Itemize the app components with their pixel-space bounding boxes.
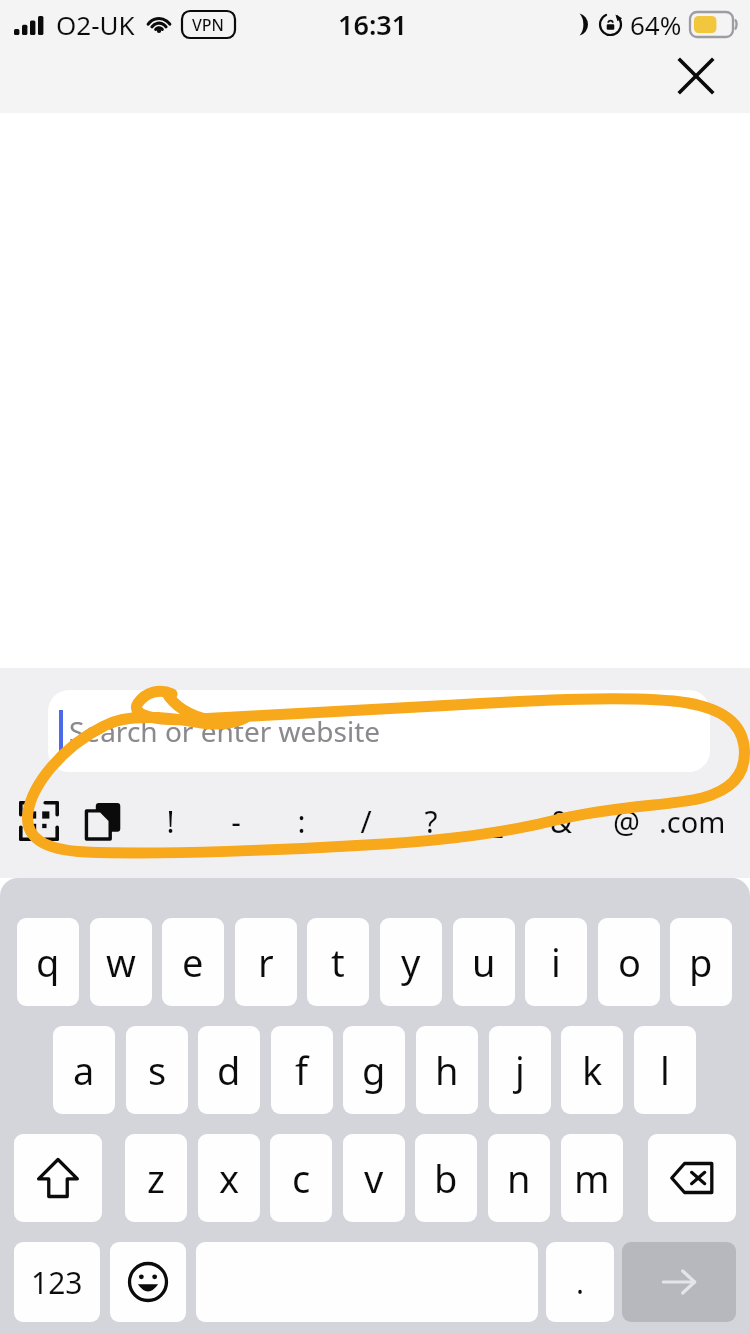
staticText: f	[295, 1044, 309, 1096]
button[interactable]: !	[143, 792, 197, 850]
staticText: .	[576, 1262, 585, 1303]
button[interactable]: Paste and go	[76, 794, 130, 848]
button[interactable]: /	[339, 792, 393, 850]
button[interactable]: Emoji	[110, 1242, 186, 1322]
button[interactable]: q	[17, 918, 79, 1006]
staticText: :	[297, 801, 306, 842]
button[interactable]: o	[598, 918, 660, 1006]
button[interactable]: ?	[404, 792, 458, 850]
staticText: i	[551, 936, 561, 988]
staticText: p	[689, 936, 713, 988]
staticText: _	[489, 801, 503, 842]
staticText: b	[434, 1152, 458, 1204]
staticText: @	[613, 801, 640, 842]
staticText: -	[231, 801, 241, 842]
staticText: w	[106, 936, 136, 988]
staticText: k	[582, 1044, 603, 1096]
staticText: /	[360, 801, 372, 842]
staticText: j	[515, 1044, 525, 1096]
button[interactable]: f	[271, 1026, 333, 1114]
staticText: q	[36, 936, 60, 988]
button[interactable]: Search or enter website	[48, 690, 710, 772]
button[interactable]: u	[453, 918, 515, 1006]
staticText: u	[472, 936, 496, 988]
staticText: .com	[659, 802, 726, 841]
staticText: 123	[31, 1262, 83, 1303]
button[interactable]: -	[209, 792, 263, 850]
button[interactable]: &	[534, 792, 588, 850]
staticText: g	[362, 1044, 386, 1096]
button[interactable]: a	[53, 1026, 115, 1114]
staticText: O2-UK	[56, 7, 135, 42]
button[interactable]: e	[162, 918, 224, 1006]
staticText: z	[147, 1152, 165, 1204]
button[interactable]: r	[235, 918, 297, 1006]
button[interactable]: y	[380, 918, 442, 1006]
button[interactable]: Close	[669, 49, 723, 103]
staticText: m	[574, 1152, 610, 1204]
staticText: s	[148, 1044, 167, 1096]
button[interactable]: Scan QR code	[12, 794, 66, 848]
staticText: y	[401, 936, 421, 988]
staticText: o	[618, 936, 641, 988]
button[interactable]: t	[307, 918, 369, 1006]
staticText: a	[73, 1044, 95, 1096]
staticText: &	[550, 801, 572, 842]
staticText: VPN	[192, 14, 225, 36]
staticText: c	[292, 1152, 311, 1204]
staticText: v	[364, 1152, 384, 1204]
button[interactable]: _	[469, 792, 523, 850]
button[interactable]: j	[489, 1026, 551, 1114]
staticText: h	[435, 1044, 459, 1096]
button[interactable]: h	[416, 1026, 478, 1114]
staticText: e	[182, 936, 204, 988]
button[interactable]: b	[415, 1134, 477, 1222]
button[interactable]: Go	[622, 1242, 736, 1322]
button[interactable]: m	[561, 1134, 623, 1222]
button[interactable]: k	[561, 1026, 623, 1114]
button[interactable]: .	[546, 1242, 614, 1322]
button[interactable]: p	[670, 918, 732, 1006]
staticText: ?	[424, 801, 438, 842]
button[interactable]: x	[198, 1134, 260, 1222]
button[interactable]: 123	[14, 1242, 100, 1322]
staticText: d	[217, 1044, 241, 1096]
button[interactable]: g	[343, 1026, 405, 1114]
button[interactable]: @	[599, 792, 653, 850]
staticText: t	[331, 936, 345, 988]
staticText: l	[660, 1044, 670, 1096]
staticText: r	[258, 936, 274, 988]
staticText: 64%	[630, 7, 682, 42]
button[interactable]: Backspace	[648, 1134, 736, 1222]
button[interactable]: :	[274, 792, 328, 850]
staticText: n	[507, 1152, 531, 1204]
button[interactable]: w	[90, 918, 152, 1006]
button[interactable]: .com	[659, 792, 747, 850]
button[interactable]: n	[488, 1134, 550, 1222]
button[interactable]: s	[126, 1026, 188, 1114]
staticText: x	[219, 1152, 240, 1204]
button[interactable]: v	[343, 1134, 405, 1222]
button[interactable]: Shift	[14, 1134, 102, 1222]
button[interactable]: c	[270, 1134, 332, 1222]
button[interactable]: z	[125, 1134, 187, 1222]
button[interactable]: l	[634, 1026, 696, 1114]
staticText: !	[166, 801, 175, 842]
button[interactable]: d	[198, 1026, 260, 1114]
button[interactable]: i	[525, 918, 587, 1006]
staticText: Search or enter website	[69, 712, 381, 750]
staticText: 16:31	[338, 6, 408, 43]
